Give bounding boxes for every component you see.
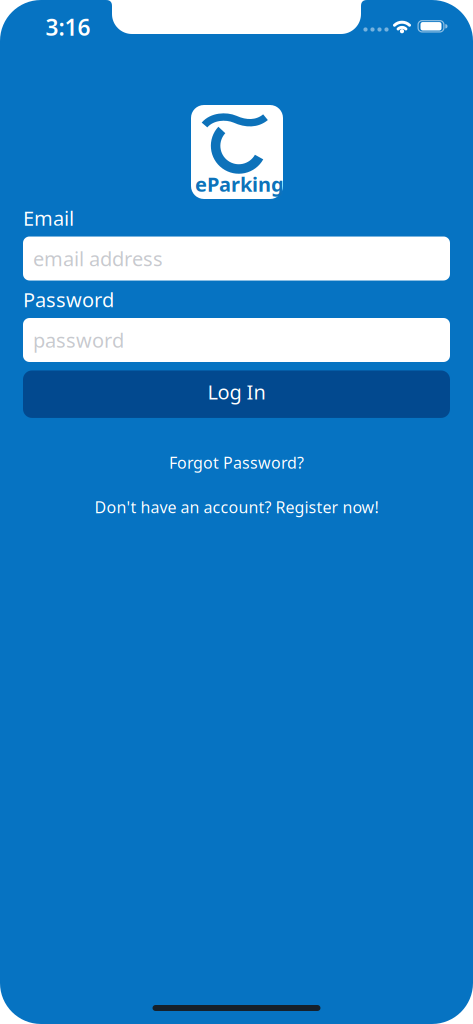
staticText: password bbox=[33, 327, 124, 353]
button[interactable]: Forgot Password? bbox=[169, 452, 304, 473]
staticText: 3:16 bbox=[45, 12, 90, 42]
button[interactable]: email address bbox=[23, 236, 450, 280]
button[interactable]: Log In bbox=[23, 370, 450, 418]
button[interactable]: Don't have an account? Register now! bbox=[94, 496, 378, 518]
button[interactable]: password bbox=[23, 318, 450, 362]
staticText: eParking bbox=[195, 171, 284, 197]
staticText: Log In bbox=[207, 378, 265, 405]
staticText: Forgot Password? bbox=[169, 452, 304, 473]
staticText: Password bbox=[23, 286, 114, 313]
staticText: Don't have an account? Register now! bbox=[94, 496, 378, 518]
staticText: Email bbox=[23, 205, 74, 231]
staticText: email address bbox=[33, 245, 163, 272]
